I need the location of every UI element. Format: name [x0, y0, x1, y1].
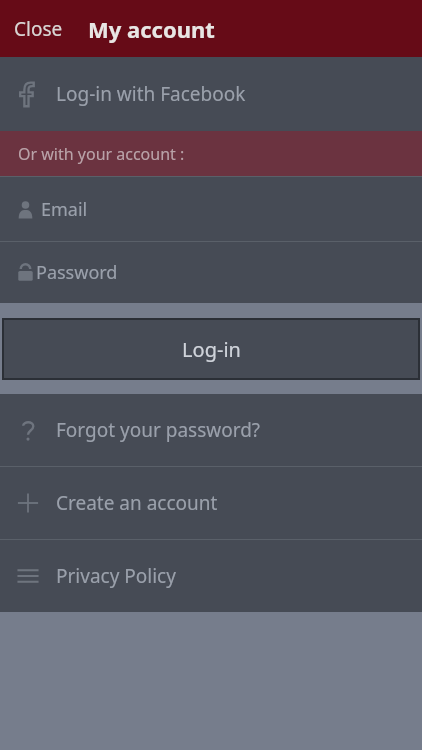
button[interactable]: Log-in: [2, 318, 420, 380]
staticText: Password: [36, 260, 118, 285]
button[interactable]: Privacy Policy: [0, 540, 422, 612]
button[interactable]: Password: [0, 242, 422, 303]
staticText: Log-in with Facebook: [56, 81, 246, 107]
button[interactable]: Log-in with Facebook: [0, 57, 422, 131]
staticText: Close: [14, 16, 63, 42]
staticText: Or with your account :: [18, 143, 185, 165]
staticText: My account: [88, 14, 215, 44]
staticText: Email: [41, 197, 88, 222]
button[interactable]: Forgot your password?: [0, 394, 422, 466]
staticText: Forgot your password?: [56, 417, 261, 443]
button[interactable]: Email: [0, 177, 422, 241]
staticText: Create an account: [56, 490, 218, 516]
button[interactable]: Create an account: [0, 467, 422, 539]
button[interactable]: Close: [4, 8, 73, 50]
staticText: Log-in: [182, 336, 241, 363]
staticText: Privacy Policy: [56, 563, 176, 589]
